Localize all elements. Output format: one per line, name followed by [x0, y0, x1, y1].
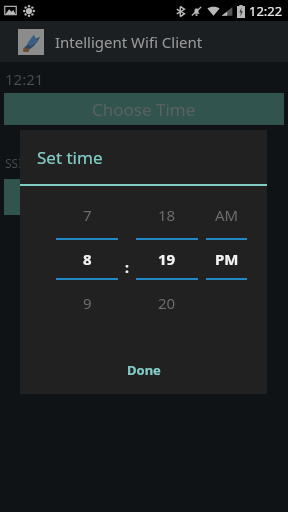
staticText: Done [127, 361, 161, 379]
staticText: 18 [158, 205, 176, 225]
staticText: : [125, 258, 129, 277]
button[interactable]: 18 [136, 187, 198, 347]
staticText: 7 [83, 205, 92, 225]
staticText: 9 [83, 293, 92, 313]
staticText: SSID [5, 155, 32, 171]
staticText: 12:22 [249, 2, 283, 20]
button[interactable]: Choose Time [4, 93, 284, 125]
staticText: Choose Time [92, 98, 196, 121]
button[interactable]: AM [206, 187, 247, 347]
staticText: 8 [83, 249, 92, 269]
staticText: 12:21 [5, 69, 44, 89]
staticText: Set time [37, 146, 103, 169]
staticText: Intelligent Wifi Client [55, 32, 203, 52]
staticText: AM [215, 205, 239, 225]
staticText: PM [215, 249, 239, 269]
button[interactable]: 7 [56, 187, 118, 347]
staticText: 19 [158, 249, 176, 269]
button[interactable] [4, 179, 84, 215]
button[interactable]: Done [113, 355, 175, 385]
staticText: 20 [158, 293, 176, 313]
